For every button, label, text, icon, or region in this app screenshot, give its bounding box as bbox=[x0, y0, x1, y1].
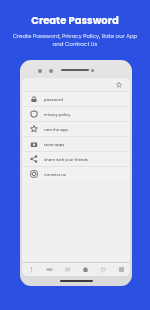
staticText: Privacy policy bbox=[44, 112, 71, 117]
staticText: Share with your friends bbox=[44, 157, 88, 162]
button[interactable]: password bbox=[22, 92, 130, 106]
button[interactable]: Games bbox=[40, 263, 58, 276]
staticText: Connect us bbox=[44, 172, 66, 177]
button[interactable]: Share with your friends bbox=[22, 152, 130, 166]
button[interactable]: Privacy policy bbox=[22, 107, 130, 121]
staticText: rate the app bbox=[44, 127, 68, 132]
staticText: More apps bbox=[44, 142, 65, 147]
staticText: Create Password bbox=[31, 13, 119, 27]
button[interactable]: Apps bbox=[112, 263, 130, 276]
button[interactable]: More apps bbox=[22, 137, 130, 151]
button[interactable]: Home bbox=[76, 263, 94, 276]
button[interactable]: Menu bbox=[58, 263, 76, 276]
button[interactable]: Info bbox=[22, 263, 40, 276]
button[interactable]: Favorites bbox=[94, 263, 112, 276]
button[interactable]: Connect us bbox=[22, 167, 130, 181]
staticText: password bbox=[44, 97, 63, 102]
button[interactable]: rate the app bbox=[22, 122, 130, 136]
button[interactable]: Favorite bbox=[114, 80, 123, 89]
staticText: Create Password, Privacy Policy, Rate ou… bbox=[11, 32, 139, 48]
